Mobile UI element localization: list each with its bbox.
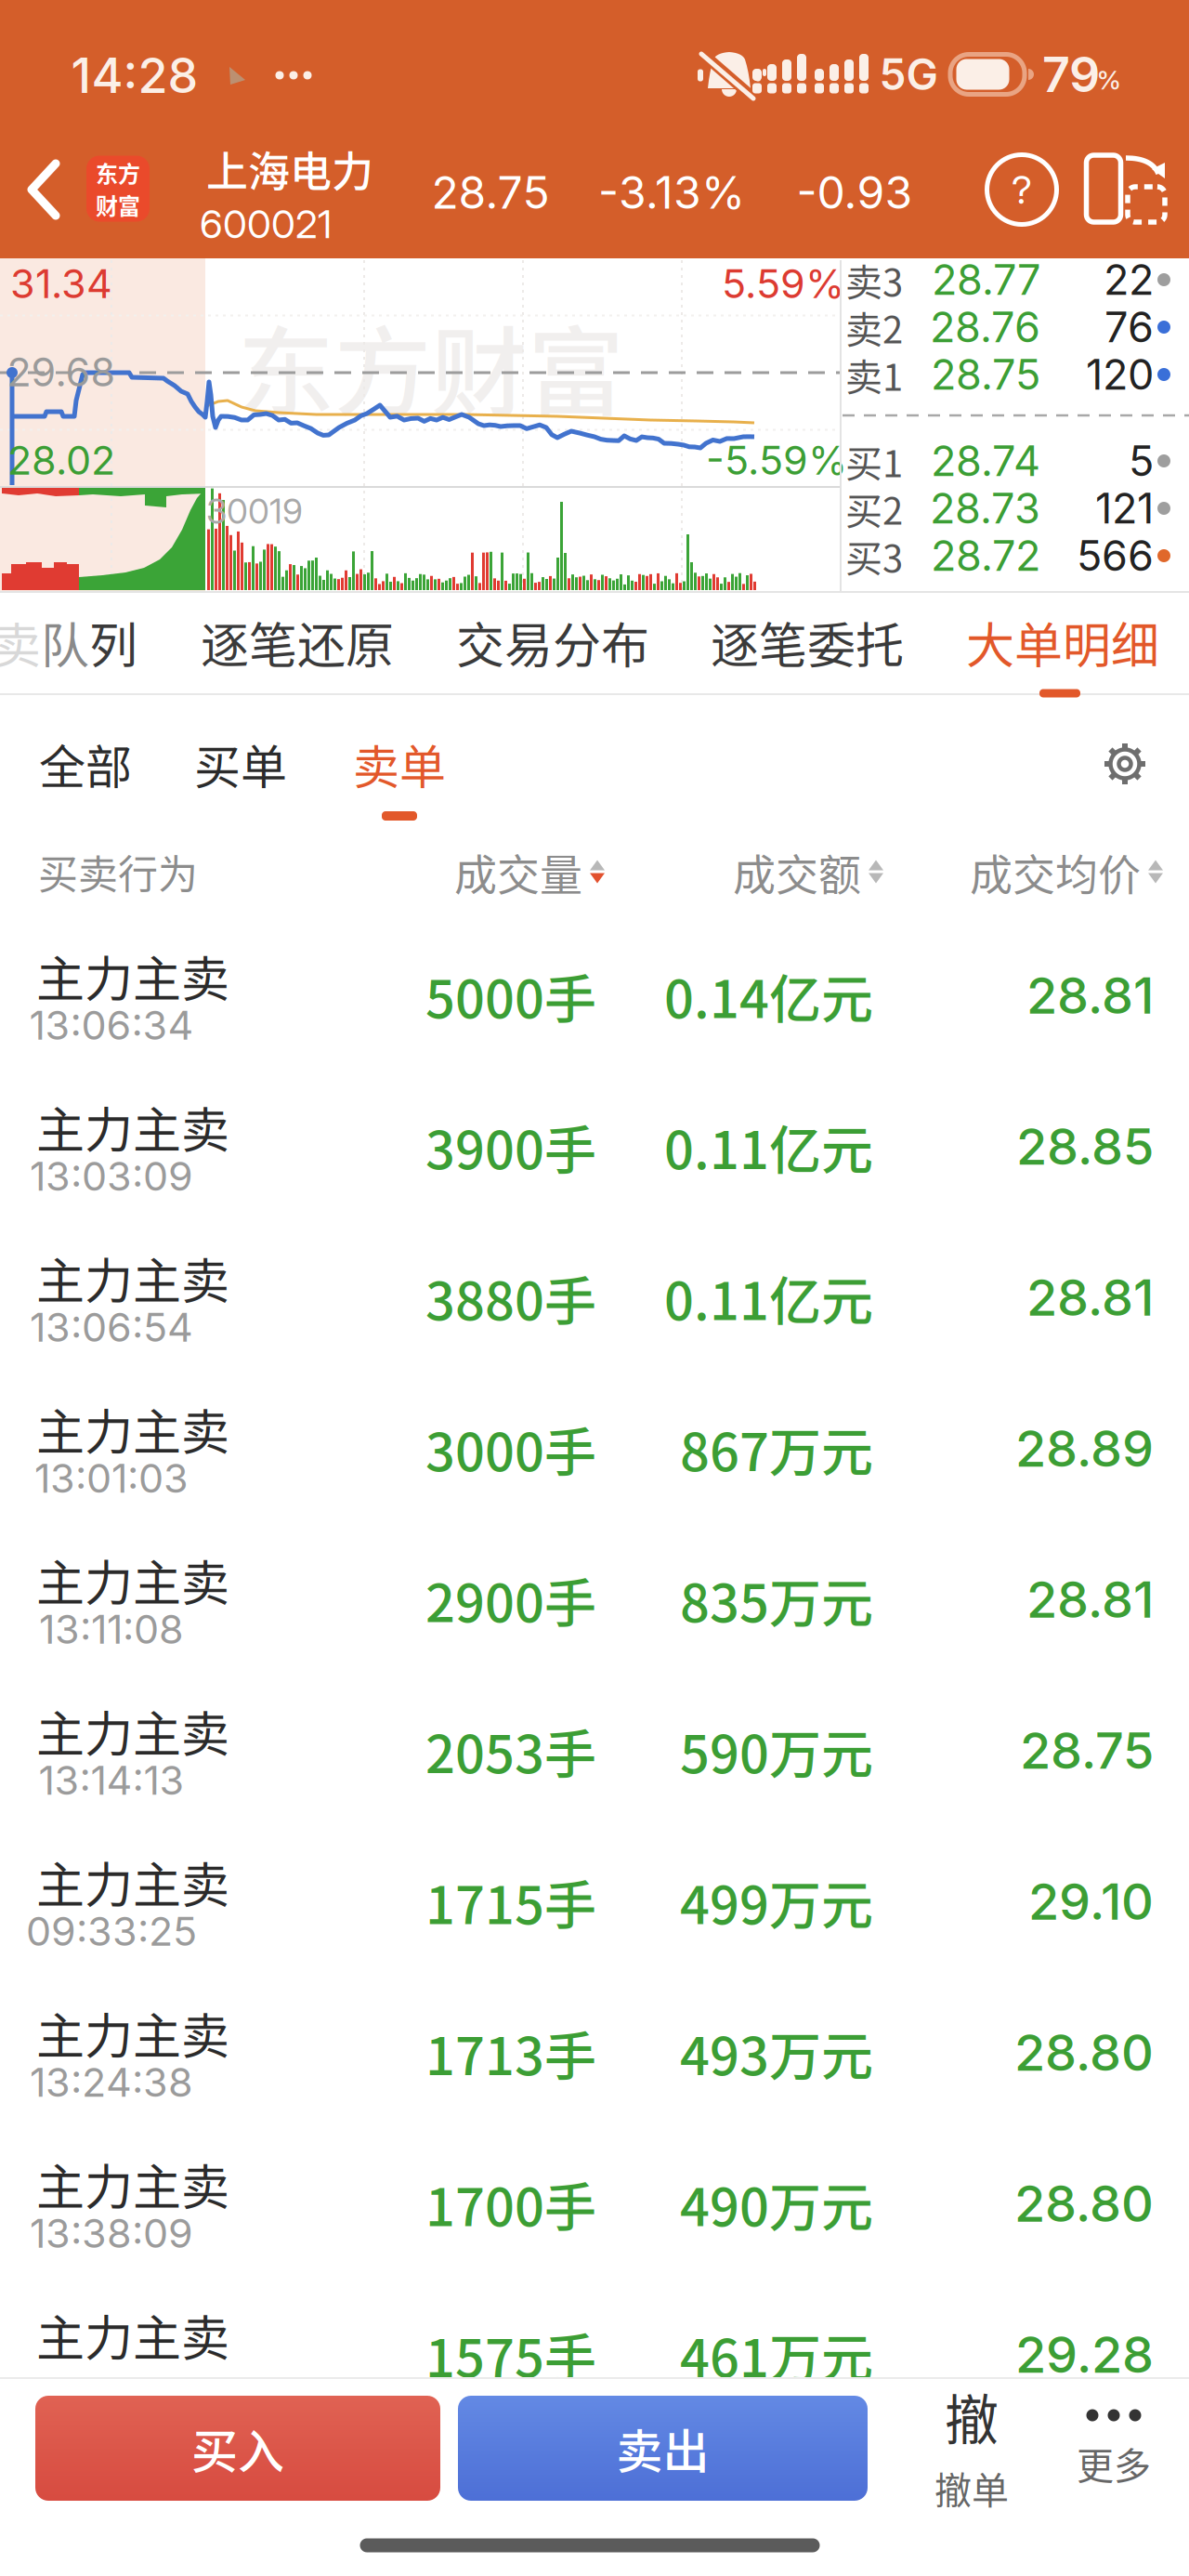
staticText: 主力主卖 — [36, 1394, 229, 1464]
staticText: 867万元 — [680, 1411, 873, 1486]
staticText: 更多 — [1077, 2436, 1151, 2490]
staticText: 0.14亿元 — [664, 958, 873, 1033]
staticText: 买2 — [845, 481, 903, 535]
button[interactable]: Help — [987, 155, 1057, 224]
button[interactable]: 成交额 — [733, 841, 883, 903]
button[interactable]: 撤 — [934, 2377, 1009, 2515]
button[interactable]: 东方财富 — [86, 156, 150, 222]
staticText: ? — [1012, 166, 1032, 213]
staticText: 28.76 — [930, 302, 1040, 352]
staticText: 主力主卖 — [36, 1847, 229, 1917]
staticText: 28.75 — [931, 349, 1040, 400]
staticText: 28.81 — [1026, 965, 1154, 1026]
staticText: -3.13% — [598, 165, 745, 219]
staticText: 2053手 — [425, 1713, 596, 1788]
staticText: 东方财富 — [238, 296, 624, 436]
staticText: 成交均价 — [970, 841, 1141, 903]
staticText: -5.59% — [706, 436, 847, 484]
staticText: 逐笔委托 — [711, 607, 904, 677]
staticText: 卖单 — [353, 730, 446, 798]
staticText: 队 — [41, 607, 89, 677]
button[interactable]: 成交均价 — [970, 841, 1163, 903]
button[interactable]: Settings — [1102, 741, 1148, 787]
staticText: 2900手 — [425, 1562, 596, 1637]
staticText: 东方 — [96, 156, 140, 189]
button[interactable]: 大单明细 — [966, 607, 1159, 677]
button[interactable]: 买单 — [194, 730, 287, 798]
staticText: 13:11:08 — [39, 1605, 184, 1653]
staticText: 卖2 — [845, 300, 903, 354]
staticText: 卖出 — [616, 2415, 709, 2482]
button[interactable]: 逐笔委托 — [711, 607, 904, 677]
staticText: 28.75 — [431, 165, 549, 219]
staticText: 卖 — [0, 607, 41, 677]
staticText: 13:38:09 — [30, 2209, 193, 2257]
staticText: 主力主卖 — [36, 2300, 229, 2370]
staticText: 28.81 — [1026, 1267, 1154, 1328]
staticText: 主力主卖 — [36, 1545, 229, 1615]
button[interactable]: 逐笔还原 — [201, 607, 394, 677]
staticText: 3000手 — [425, 1411, 596, 1486]
staticText: 09:33:25 — [26, 1907, 197, 1955]
button[interactable]: 买入 — [35, 2396, 440, 2501]
staticText: 30019 — [206, 490, 303, 532]
staticText: 29.68 — [7, 348, 116, 396]
staticText: 3900手 — [425, 1109, 596, 1184]
staticText: 逐笔还原 — [201, 607, 394, 677]
staticText: 28.73 — [930, 483, 1040, 534]
button[interactable]: Back — [11, 121, 76, 258]
staticText: 买3 — [845, 529, 903, 583]
staticText: 1715手 — [425, 1864, 596, 1939]
staticText: 13:06:54 — [30, 1303, 193, 1351]
staticText: 5.59% — [722, 259, 844, 308]
button[interactable]: 全部 — [39, 730, 132, 798]
staticText: 22 — [1104, 254, 1154, 305]
staticText: 461万元 — [680, 2317, 873, 2392]
staticText: 14:28 — [71, 46, 198, 104]
staticText: 28.81 — [1026, 1569, 1154, 1630]
button[interactable]: 交易分布 — [456, 607, 649, 677]
staticText: 主力主卖 — [36, 1243, 229, 1313]
staticText: 撤单 — [934, 2461, 1009, 2515]
staticText: 13:06:34 — [29, 1001, 194, 1049]
staticText: 13:01:03 — [34, 1454, 189, 1502]
button[interactable]: 卖 — [0, 607, 137, 677]
staticText: 13:14:13 — [39, 1756, 184, 1804]
staticText: 上海电力 — [206, 139, 373, 199]
staticText: 1713手 — [425, 2015, 596, 2090]
staticText: 0.11亿元 — [664, 1260, 873, 1335]
button[interactable]: 更多 — [1077, 2409, 1151, 2490]
staticText: 121 — [1095, 483, 1154, 534]
staticText: 列 — [89, 607, 137, 677]
staticText: 490万元 — [680, 2166, 873, 2241]
staticText: 卖1 — [845, 348, 903, 401]
staticText: 5G — [879, 49, 938, 100]
staticText: 主力主卖 — [36, 1998, 229, 2068]
staticText: 买卖行为 — [38, 843, 198, 901]
staticText: 交易分布 — [456, 607, 649, 677]
staticText: 28.85 — [1016, 1116, 1154, 1177]
staticText: 13:24:38 — [30, 2058, 193, 2106]
staticText: 31.34 — [10, 259, 112, 308]
staticText: 买1 — [845, 434, 903, 488]
button[interactable]: 成交量 — [454, 841, 605, 903]
staticText: 28.77 — [932, 254, 1040, 305]
button[interactable]: 卖单 — [353, 730, 446, 798]
button[interactable]: Landscape — [1085, 151, 1169, 226]
staticText: 28.74 — [931, 436, 1040, 486]
staticText: 主力主卖 — [36, 941, 229, 1011]
staticText: % — [1097, 64, 1122, 96]
staticText: 卖3 — [845, 253, 903, 307]
staticText: 大单明细 — [966, 607, 1159, 677]
staticText: 590万元 — [680, 1713, 873, 1788]
staticText: -0.93 — [797, 165, 913, 219]
staticText: 28.80 — [1014, 2173, 1154, 2234]
staticText: 13:03:09 — [30, 1152, 193, 1200]
staticText: 主力主卖 — [36, 1696, 229, 1766]
staticText: 1700手 — [425, 2166, 596, 2241]
staticText: 5 — [1129, 436, 1154, 486]
staticText: 主力主卖 — [36, 1092, 229, 1162]
staticText: 撤 — [945, 2377, 999, 2455]
button[interactable]: 卖出 — [458, 2396, 868, 2501]
staticText: 29.10 — [1028, 1871, 1154, 1932]
